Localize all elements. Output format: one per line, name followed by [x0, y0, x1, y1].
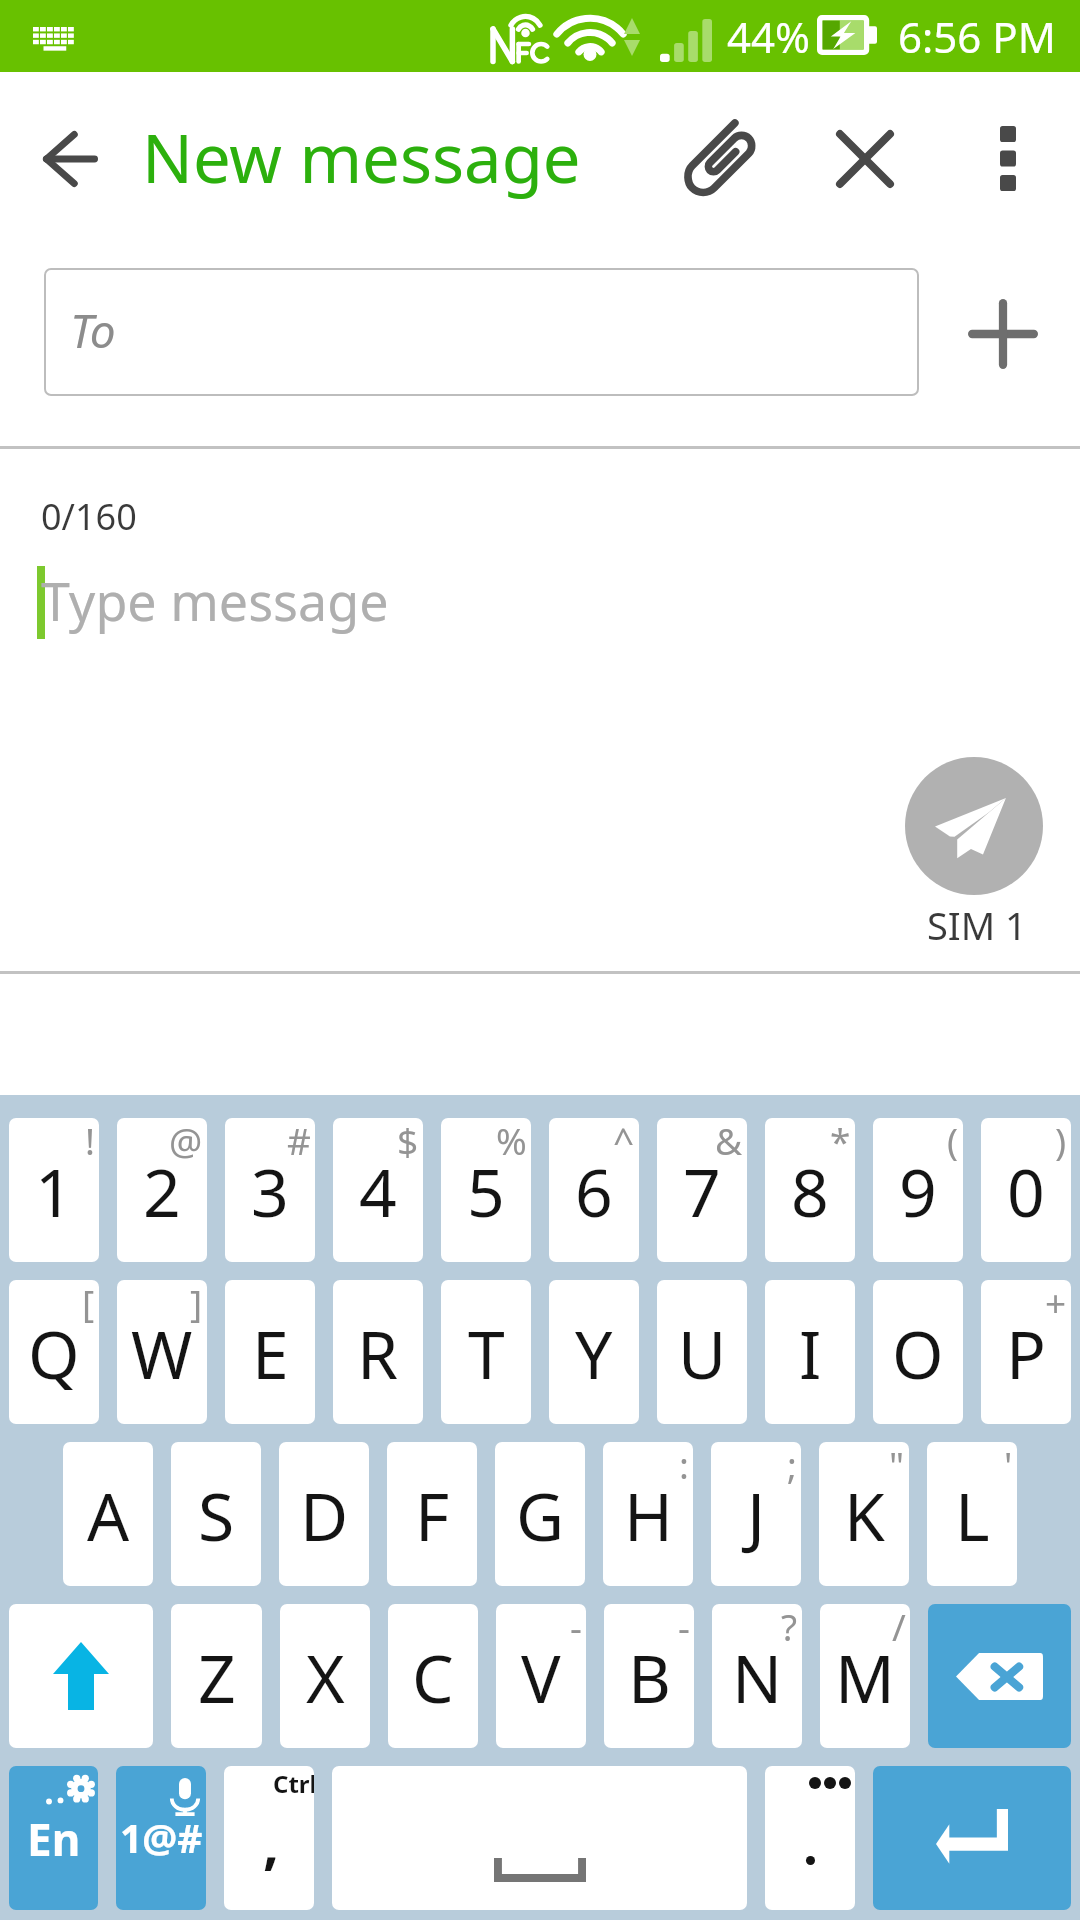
- button[interactable]: More options: [948, 98, 1068, 218]
- staticText: To: [70, 299, 116, 362]
- button[interactable]: Z: [171, 1604, 262, 1748]
- button[interactable]: To: [44, 268, 919, 396]
- button[interactable]: ?: [712, 1604, 802, 1748]
- button[interactable]: Add recipient: [943, 274, 1063, 394]
- button[interactable]: %: [441, 1118, 531, 1262]
- staticText: ?: [781, 1604, 798, 1651]
- staticText: C: [412, 1632, 454, 1722]
- button[interactable]: *: [765, 1118, 855, 1262]
- staticText: 4: [359, 1146, 397, 1236]
- button[interactable]: R: [333, 1280, 423, 1424]
- staticText: B: [628, 1632, 671, 1722]
- staticText: 6:56 PM: [898, 8, 1056, 65]
- button[interactable]: &: [657, 1118, 747, 1262]
- button[interactable]: Language: [9, 1766, 98, 1910]
- staticText: Y: [575, 1308, 613, 1398]
- button[interactable]: [765, 1766, 855, 1910]
- staticText: !: [85, 1118, 95, 1165]
- staticText: 0: [1007, 1146, 1045, 1236]
- staticText: R: [357, 1308, 399, 1398]
- button[interactable]: [: [9, 1280, 99, 1424]
- staticText: W: [131, 1308, 193, 1398]
- staticText: ': [1004, 1442, 1013, 1489]
- staticText: K: [844, 1470, 885, 1560]
- button[interactable]: I: [765, 1280, 855, 1424]
- staticText: ;: [787, 1442, 797, 1489]
- button[interactable]: Y: [549, 1280, 639, 1424]
- button[interactable]: +: [981, 1280, 1071, 1424]
- staticText: X: [306, 1632, 345, 1722]
- button[interactable]: T: [441, 1280, 531, 1424]
- button[interactable]: #: [225, 1118, 315, 1262]
- button[interactable]: -: [496, 1604, 586, 1748]
- button[interactable]: Shift: [9, 1604, 153, 1748]
- button[interactable]: S: [171, 1442, 261, 1586]
- staticText: M: [835, 1632, 895, 1722]
- button[interactable]: ;: [711, 1442, 801, 1586]
- button[interactable]: Back: [22, 111, 118, 207]
- staticText: 7: [683, 1146, 721, 1236]
- staticText: N: [732, 1632, 783, 1722]
- button[interactable]: Ctrl: [224, 1766, 314, 1910]
- staticText: @: [169, 1118, 203, 1165]
- staticText: 9: [899, 1146, 937, 1236]
- staticText: L: [955, 1470, 990, 1560]
- staticText: :: [679, 1442, 689, 1489]
- button[interactable]: O: [873, 1280, 963, 1424]
- staticText: Type message: [41, 565, 389, 636]
- staticText: -: [678, 1604, 690, 1651]
- staticText: E: [252, 1308, 289, 1398]
- button[interactable]: ^: [549, 1118, 639, 1262]
- staticText: New message: [142, 111, 581, 202]
- button[interactable]: !: [9, 1118, 99, 1262]
- button[interactable]: Backspace: [928, 1604, 1071, 1748]
- staticText: SIM 1: [927, 899, 1027, 951]
- button[interactable]: D: [279, 1442, 369, 1586]
- button[interactable]: F: [387, 1442, 477, 1586]
- button[interactable]: G: [495, 1442, 585, 1586]
- button[interactable]: C: [388, 1604, 478, 1748]
- button[interactable]: -: [604, 1604, 694, 1748]
- button[interactable]: $: [333, 1118, 423, 1262]
- button[interactable]: Space: [332, 1766, 747, 1910]
- staticText: ]: [190, 1280, 203, 1327]
- staticText: *: [830, 1118, 851, 1165]
- button[interactable]: ': [927, 1442, 1017, 1586]
- staticText: S: [198, 1470, 235, 1560]
- staticText: %: [496, 1118, 527, 1165]
- button[interactable]: ): [981, 1118, 1071, 1262]
- button[interactable]: Enter: [873, 1766, 1071, 1910]
- staticText: T: [468, 1308, 505, 1398]
- staticText: 5: [467, 1146, 505, 1236]
- button[interactable]: Send: [905, 757, 1043, 895]
- staticText: Z: [198, 1632, 236, 1722]
- button[interactable]: X: [280, 1604, 370, 1748]
- staticText: F: [415, 1470, 450, 1560]
- staticText: H: [624, 1470, 673, 1560]
- button[interactable]: U: [657, 1280, 747, 1424]
- staticText: ): [1055, 1118, 1067, 1165]
- button[interactable]: :: [603, 1442, 693, 1586]
- button[interactable]: Close: [805, 99, 925, 219]
- button[interactable]: Symbols: [116, 1766, 206, 1910]
- staticText: 44%: [727, 8, 810, 65]
- staticText: D: [300, 1470, 349, 1560]
- staticText: 6: [575, 1146, 613, 1236]
- button[interactable]: Attach: [660, 99, 780, 219]
- button[interactable]: @: [117, 1118, 207, 1262]
- staticText: Q: [28, 1308, 80, 1398]
- button[interactable]: (: [873, 1118, 963, 1262]
- staticText: G: [516, 1470, 565, 1560]
- staticText: 1@#: [120, 1811, 203, 1864]
- button[interactable]: ]: [117, 1280, 207, 1424]
- button[interactable]: ": [819, 1442, 909, 1586]
- button[interactable]: A: [63, 1442, 153, 1586]
- button[interactable]: E: [225, 1280, 315, 1424]
- staticText: 3: [251, 1146, 289, 1236]
- staticText: En: [27, 1809, 81, 1869]
- staticText: 8: [791, 1146, 829, 1236]
- button[interactable]: /: [820, 1604, 910, 1748]
- staticText: &: [715, 1118, 743, 1165]
- staticText: ^: [613, 1118, 635, 1165]
- staticText: 0/160: [41, 492, 137, 541]
